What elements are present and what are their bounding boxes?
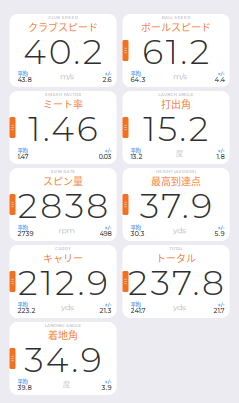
staticText: 度	[62, 379, 70, 390]
staticText: TOTAL	[169, 246, 183, 251]
staticText: 40.2	[23, 30, 103, 73]
staticText: 最高到達点	[151, 174, 201, 188]
staticText: 1.46	[28, 107, 98, 150]
staticText: ボールスピード	[141, 20, 211, 34]
staticText: 平均	[130, 70, 140, 77]
staticText: +/-	[217, 70, 224, 77]
staticText: +/-	[104, 378, 111, 385]
staticText: クラブスピード	[28, 20, 98, 34]
staticText: LANDING ANGLE	[45, 323, 81, 328]
staticText: 237.8	[128, 261, 224, 304]
staticText: 5.9	[214, 229, 224, 237]
staticText: LAUNCH ANGLE	[158, 92, 194, 97]
staticText: 37.9	[140, 184, 212, 227]
staticText: 15.2	[143, 107, 209, 150]
button[interactable]: LANDING ANGLE	[9, 322, 116, 395]
staticText: +/-	[217, 224, 224, 231]
button[interactable]: CARRY	[9, 245, 116, 318]
staticText: 打出角	[161, 97, 191, 111]
staticText: トータル	[156, 251, 196, 265]
staticText: 30.3	[130, 229, 144, 237]
staticText: yds	[173, 226, 186, 235]
staticText: m/s	[173, 72, 187, 81]
staticText: 1.8	[216, 152, 224, 160]
staticText: スピン量	[43, 174, 83, 188]
staticText: 平均	[130, 147, 140, 154]
staticText: 61.2	[142, 30, 210, 73]
staticText: rpm	[58, 226, 74, 235]
staticText: 平均	[17, 301, 27, 308]
button[interactable]: SPIN RATE	[9, 168, 116, 241]
staticText: 平均	[17, 378, 27, 385]
staticText: +/-	[217, 301, 224, 308]
staticText: yds	[173, 303, 186, 312]
staticText: m/s	[60, 72, 74, 81]
button[interactable]: LAUNCH ANGLE	[122, 91, 229, 164]
staticText: CLUB SPEED	[48, 15, 78, 20]
staticText: 1.47	[17, 152, 28, 160]
staticText: 度	[175, 148, 183, 159]
staticText: 3.9	[101, 383, 111, 391]
staticText: 212.9	[18, 261, 108, 304]
staticText: ミート率	[43, 97, 83, 111]
staticText: +/-	[104, 70, 111, 77]
staticText: 34.9	[24, 338, 102, 381]
staticText: 平均	[130, 301, 140, 308]
staticText: +/-	[104, 147, 111, 154]
staticText: 0.03	[98, 152, 111, 160]
staticText: 2.6	[102, 75, 111, 83]
staticText: SMASH FACTOR	[45, 92, 81, 97]
staticText: 平均	[17, 70, 27, 77]
button[interactable]: TOTAL	[122, 245, 229, 318]
staticText: 21.3	[99, 306, 111, 314]
staticText: 4.4	[214, 75, 224, 83]
staticText: 2838	[18, 184, 108, 227]
staticText: 2739	[17, 229, 33, 237]
staticText: 43.8	[17, 75, 31, 83]
staticText: 13.2	[130, 152, 142, 160]
staticText: 241.7	[130, 306, 145, 314]
staticText: yds	[61, 303, 74, 312]
staticText: 21.7	[213, 306, 224, 314]
button[interactable]: BALL SPEED	[122, 14, 229, 87]
staticText: CARRY	[55, 246, 71, 251]
staticText: +/-	[104, 224, 111, 231]
staticText: 223.2	[17, 306, 35, 314]
button[interactable]: CLUB SPEED	[9, 14, 116, 87]
staticText: +/-	[217, 147, 224, 154]
staticText: 64.3	[130, 75, 145, 83]
button[interactable]: HEIGHT (APPROX)	[122, 168, 229, 241]
staticText: BALL SPEED	[162, 15, 190, 20]
staticText: +/-	[104, 301, 111, 308]
staticText: 着地角	[48, 328, 78, 342]
button[interactable]: SMASH FACTOR	[9, 91, 116, 164]
staticText: 39.8	[17, 383, 31, 391]
staticText: 498	[99, 229, 111, 237]
staticText: 平均	[17, 224, 27, 231]
staticText: 平均	[17, 147, 27, 154]
staticText: HEIGHT (APPROX)	[156, 169, 196, 174]
staticText: キャリー	[43, 251, 83, 265]
staticText: 平均	[130, 224, 140, 231]
staticText: SPIN RATE	[51, 169, 75, 174]
